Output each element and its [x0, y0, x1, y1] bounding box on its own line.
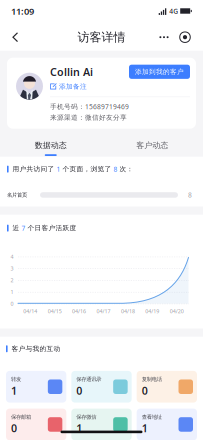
staticText: 次： — [118, 165, 134, 173]
staticText: 个页面，浏览了 — [61, 165, 114, 173]
staticText: 1 — [142, 421, 148, 435]
button[interactable]: 客户动态 — [101, 131, 203, 158]
staticText: 1 — [57, 165, 61, 174]
staticText: 1 — [76, 421, 82, 435]
staticText: 访客详情 — [77, 30, 125, 44]
button[interactable]: 保存邮箱 — [6, 409, 66, 440]
staticText: 1 — [10, 288, 13, 295]
staticText: 保存通讯录 — [76, 376, 101, 382]
button[interactable]: Back — [5, 26, 26, 48]
staticText: 04/19 — [145, 308, 159, 315]
staticText: 近 — [13, 224, 22, 232]
staticText: 8 — [114, 165, 118, 174]
button[interactable]: 添加到我的客户 — [129, 65, 190, 79]
staticText: 11:09 — [11, 5, 34, 17]
button[interactable]: 转发 — [6, 371, 66, 403]
staticText: 04/16 — [72, 308, 86, 315]
staticText: 添加备注 — [59, 82, 87, 91]
staticText: 04/17 — [96, 308, 110, 315]
staticText: 0 — [11, 421, 17, 435]
button[interactable]: 查看地址 — [137, 409, 197, 440]
staticText: 转发 — [11, 376, 21, 382]
button[interactable]: More — [157, 30, 171, 44]
staticText: 0 — [142, 383, 148, 398]
staticText: 复制电话 — [142, 376, 162, 382]
staticText: 8 — [188, 190, 192, 199]
staticText: 04/20 — [170, 308, 184, 315]
button[interactable]: 复制电话 — [137, 371, 197, 403]
staticText: 4G — [169, 7, 178, 16]
button[interactable]: 保存微信 — [71, 409, 132, 440]
staticText: 04/14 — [23, 308, 37, 315]
staticText: 0 — [10, 300, 13, 307]
staticText: 用户共访问了 — [13, 165, 57, 173]
staticText: 04/18 — [121, 308, 135, 315]
staticText: 2 — [10, 277, 13, 284]
staticText: 手机号码：15689719469 — [50, 102, 129, 111]
staticText: 7 — [22, 224, 26, 233]
staticText: 查看地址 — [142, 414, 162, 420]
staticText: 客户与我的互动 — [12, 345, 61, 353]
staticText: 1 — [11, 383, 17, 398]
staticText: 0 — [76, 383, 82, 398]
staticText: 来源渠道：微信好友分享 — [50, 113, 127, 122]
staticText: 04/15 — [48, 308, 62, 315]
staticText: Collin Ai — [50, 65, 93, 79]
button[interactable]: Close — [178, 30, 192, 44]
staticText: 保存微信 — [76, 414, 96, 420]
staticText: 个日客户活跃度 — [26, 224, 77, 232]
staticText: 添加到我的客户 — [135, 68, 184, 76]
button[interactable]: 数据动态 — [0, 131, 101, 158]
button[interactable]: 添加备注 — [50, 82, 87, 91]
staticText: 数据动态 — [35, 140, 67, 150]
staticText: 名片首页 — [7, 192, 27, 198]
staticText: 保存邮箱 — [11, 414, 31, 420]
staticText: 3 — [10, 265, 13, 272]
button[interactable]: 保存通讯录 — [71, 371, 132, 403]
staticText: 4 — [10, 253, 13, 260]
staticText: 客户动态 — [136, 140, 168, 150]
